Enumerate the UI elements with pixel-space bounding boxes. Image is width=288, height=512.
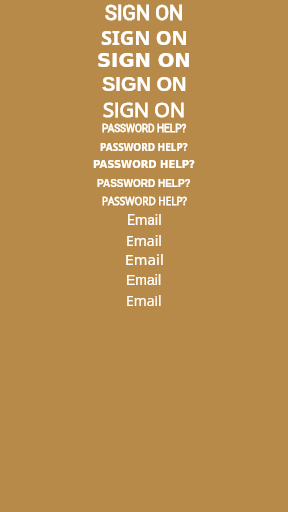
staticText: Email [126, 272, 162, 288]
staticText: PASSWORD HELP? [102, 194, 187, 208]
staticText: SIGN ON [102, 73, 187, 95]
staticText: SIGN ON [101, 24, 188, 48]
staticText: PASSWORD HELP? [102, 123, 187, 135]
staticText: PASSWORD HELP? [93, 159, 195, 171]
staticText: PASSWORD HELP? [97, 178, 191, 189]
staticText: SIGN ON [103, 96, 185, 120]
staticText: SIGN ON [97, 49, 191, 72]
staticText: Email [127, 212, 162, 228]
staticText: Email [126, 291, 162, 310]
staticText: SIGN ON [105, 1, 184, 24]
staticText: Email [125, 252, 164, 268]
staticText: Email [126, 231, 162, 250]
staticText: PASSWORD HELP? [100, 140, 188, 154]
